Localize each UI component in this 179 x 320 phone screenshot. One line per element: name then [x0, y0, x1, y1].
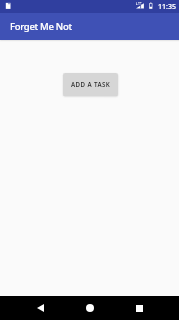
staticText: 11:35: [158, 2, 176, 12]
button[interactable]: ADD A TASK: [63, 73, 118, 96]
staticText: ADD A TASK: [71, 80, 111, 88]
button[interactable]: Home: [75, 296, 105, 320]
staticText: Forget Me Not: [10, 20, 72, 33]
button[interactable]: Back: [25, 296, 55, 320]
button[interactable]: Recent apps: [124, 296, 154, 320]
